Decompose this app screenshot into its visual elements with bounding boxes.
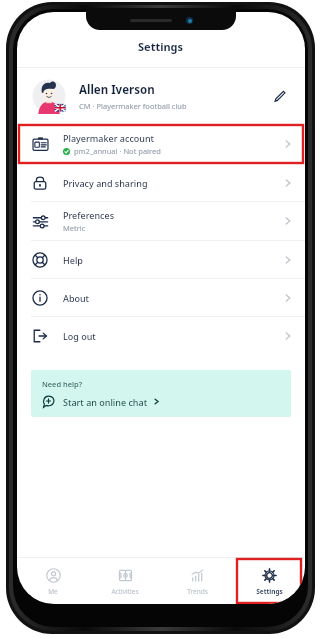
staticText: About	[63, 292, 90, 304]
staticText: Settings	[256, 587, 283, 596]
button[interactable]: Edit profile	[267, 84, 291, 108]
staticText: pm2_annual · Not paired	[74, 146, 161, 156]
staticText: Preferences	[63, 209, 115, 221]
button[interactable]: Preferences	[17, 202, 305, 240]
button[interactable]: Trends	[161, 558, 233, 604]
button[interactable]: Activities	[89, 558, 161, 604]
button[interactable]: Settings	[233, 558, 305, 604]
staticText: Metric	[63, 223, 86, 233]
staticText: Privacy and sharing	[63, 177, 148, 189]
staticText: Start an online chat	[63, 396, 148, 408]
button[interactable]: Log out	[17, 317, 305, 354]
staticText: Playermaker account	[63, 132, 155, 144]
button[interactable]: Need help?	[31, 370, 291, 417]
staticText: Me	[48, 587, 58, 596]
button[interactable]: Me	[17, 558, 89, 604]
staticText: Allen Iverson	[79, 82, 155, 98]
staticText: CM · Playermaker football club	[79, 101, 187, 111]
staticText: Trends	[187, 587, 208, 596]
staticText: Help	[63, 254, 83, 266]
staticText: Log out	[63, 330, 96, 342]
button[interactable]: Help	[17, 241, 305, 278]
button[interactable]: About	[17, 279, 305, 316]
staticText: Need help?	[42, 379, 83, 389]
button[interactable]: Privacy and sharing	[17, 164, 305, 201]
staticText: Settings	[138, 39, 184, 54]
staticText: Activities	[111, 587, 139, 596]
button[interactable]: Allen Iverson	[17, 68, 305, 124]
button[interactable]: Playermaker account	[17, 125, 305, 163]
